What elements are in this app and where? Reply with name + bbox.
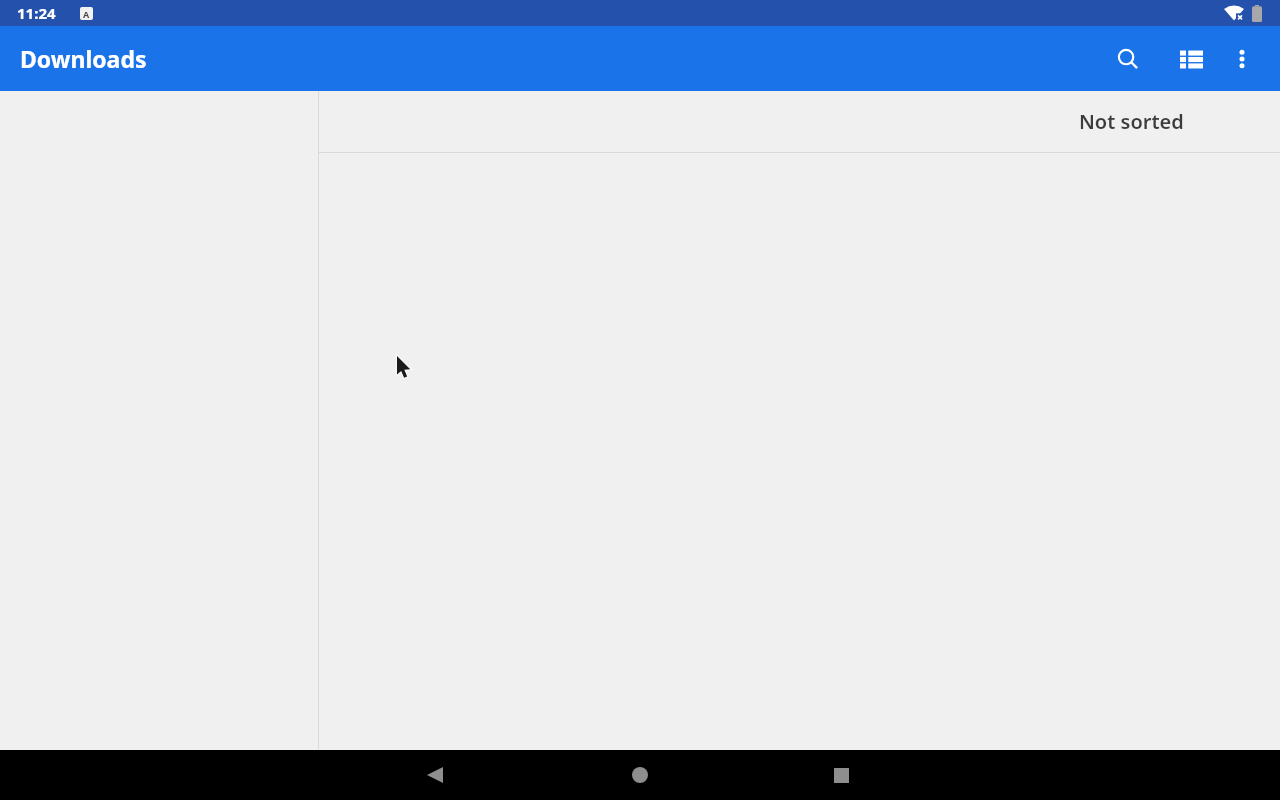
button[interactable] xyxy=(817,751,865,799)
button[interactable] xyxy=(1104,35,1152,83)
button[interactable] xyxy=(1167,35,1215,83)
staticText: Not sorted xyxy=(1079,108,1184,135)
staticText: A xyxy=(83,8,90,20)
button[interactable] xyxy=(1218,35,1266,83)
button[interactable]: Not sorted xyxy=(319,91,1280,152)
staticText: Downloads xyxy=(20,43,147,74)
staticText: 11:24 xyxy=(17,3,56,23)
button[interactable] xyxy=(616,751,664,799)
button[interactable] xyxy=(411,751,459,799)
